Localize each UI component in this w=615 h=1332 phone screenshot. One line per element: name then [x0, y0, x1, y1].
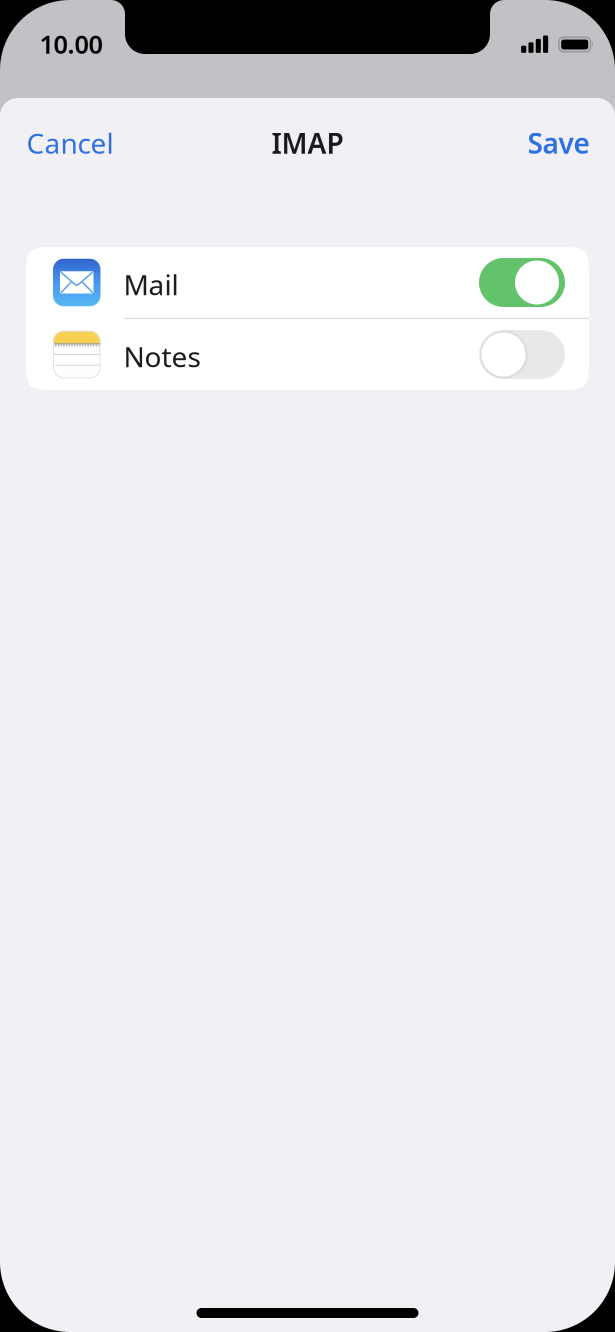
staticText: Notes: [123, 338, 200, 375]
button[interactable]: Save: [511, 110, 615, 176]
button[interactable]: Notes, off: [479, 330, 565, 379]
staticText: IMAP: [271, 124, 343, 162]
button[interactable]: Cancel: [0, 110, 129, 176]
staticText: 10.00: [39, 27, 102, 61]
staticText: Save: [527, 124, 589, 162]
staticText: Cancel: [26, 124, 113, 162]
staticText: Mail: [123, 266, 178, 303]
button[interactable]: Mail, on: [479, 258, 565, 307]
